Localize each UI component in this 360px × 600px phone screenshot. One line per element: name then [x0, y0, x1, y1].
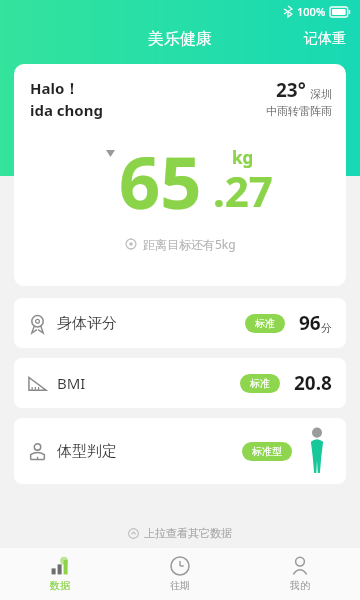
button[interactable]: 上拉查看其它数据 [0, 518, 360, 548]
other: Body figure [308, 428, 326, 474]
staticText: 20.8 [294, 370, 332, 396]
button[interactable]: BMI [14, 358, 346, 408]
staticText: Halo！ [30, 78, 80, 98]
button[interactable]: Data [0, 548, 120, 600]
button[interactable]: History [120, 548, 240, 600]
staticText: kg [232, 146, 254, 169]
staticText: 标准型 [252, 445, 282, 458]
staticText: 往期 [170, 579, 190, 592]
staticText: 中雨转雷阵雨 [266, 104, 332, 118]
staticText: 65 [119, 132, 202, 230]
other: Body type [28, 442, 47, 461]
staticText: 标准 [250, 377, 270, 390]
staticText: 标准 [255, 317, 275, 330]
staticText: 记体重 [304, 30, 346, 48]
staticText: 23° [276, 77, 306, 103]
staticText: 96 [299, 310, 321, 336]
staticText: 上拉查看其它数据 [144, 526, 232, 540]
staticText: 距离目标还有5kg [143, 236, 236, 252]
staticText: 我的 [290, 579, 310, 592]
button[interactable]: 记体重 [290, 24, 360, 54]
other: History [170, 556, 190, 576]
staticText: 身体评分 [57, 314, 117, 333]
button[interactable]: Body type [14, 418, 346, 484]
other: Data [50, 556, 70, 576]
staticText: 数据 [50, 579, 70, 592]
button[interactable]: Profile [240, 548, 360, 600]
staticText: 体型判定 [57, 442, 117, 461]
button[interactable]: Halo！ [14, 64, 346, 286]
button[interactable]: Body score [14, 298, 346, 348]
staticText: ida chong [30, 100, 103, 120]
staticText: .27 [213, 162, 273, 219]
staticText: BMI [57, 373, 86, 393]
staticText: 分 [321, 321, 332, 335]
other: Body score [28, 314, 47, 333]
staticText: 深圳 [310, 87, 332, 101]
other: BMI [28, 374, 47, 393]
other: Profile [290, 556, 310, 576]
staticText: 100% [297, 4, 326, 19]
staticText: 美乐健康 [148, 29, 212, 49]
